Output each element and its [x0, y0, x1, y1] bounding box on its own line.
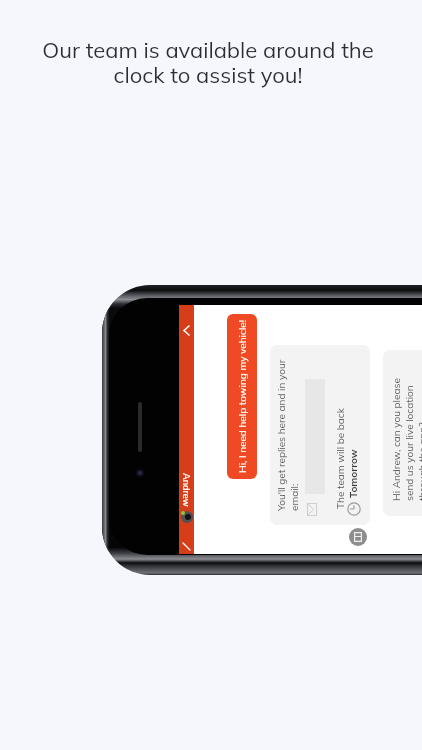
button[interactable]: Andrew	[179, 473, 194, 507]
button[interactable]: You'll get replies here and in your emai…	[270, 345, 370, 525]
staticText: Tomorrow	[347, 449, 360, 498]
button[interactable]: Hi Andrew, can you please send us your l…	[383, 350, 422, 516]
button[interactable]: Back	[179, 324, 194, 338]
staticText: Hi Andrew, can you please send us your l…	[390, 356, 422, 501]
staticText: The team will be back	[334, 408, 347, 509]
staticText: Our team is available around the clock t…	[0, 36, 419, 89]
staticText: You'll get replies here and in your emai…	[275, 359, 301, 511]
staticText: Hi, I need help towing my vehicle!	[236, 319, 249, 473]
staticText: Andrew	[181, 473, 192, 507]
other: More options	[183, 543, 190, 550]
button[interactable]: Attachment	[349, 528, 367, 546]
button[interactable]: Hi, I need help towing my vehicle!	[227, 314, 257, 479]
